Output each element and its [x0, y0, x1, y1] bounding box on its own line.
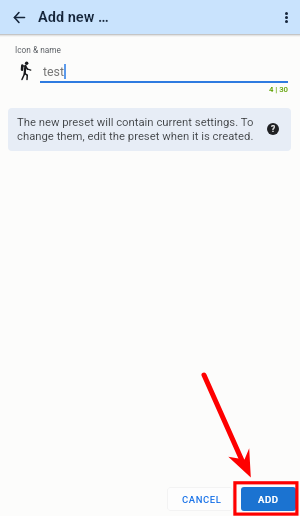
staticText: Icon & name	[15, 45, 61, 55]
staticText: test	[43, 64, 65, 79]
staticText: ADD	[258, 494, 279, 505]
button[interactable]: Help	[267, 123, 279, 135]
button[interactable]: ADD	[241, 487, 296, 511]
staticText: 4 | 30	[0, 85, 288, 94]
button[interactable]: Choose icon	[20, 61, 32, 80]
staticText: CANCEL	[182, 494, 222, 505]
staticText: The new preset will contain current sett…	[17, 116, 257, 143]
button[interactable]: Back	[0, 0, 34, 34]
staticText: ?	[271, 124, 276, 134]
staticText: Add new …	[38, 9, 109, 26]
button[interactable]: The new preset will contain current sett…	[8, 108, 291, 151]
button[interactable]: CANCEL	[167, 487, 233, 511]
button[interactable]: More options	[266, 0, 300, 34]
